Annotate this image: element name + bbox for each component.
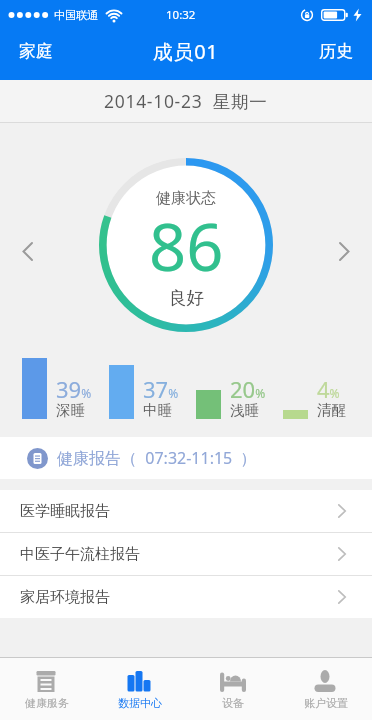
staticText: 历史: [319, 41, 353, 62]
button[interactable]: 健康服务: [0, 658, 93, 720]
staticText: 4%: [317, 374, 340, 404]
button[interactable]: 家居环境报告: [0, 576, 372, 618]
staticText: 健康服务: [25, 696, 69, 710]
button[interactable]: 账户设置: [279, 658, 372, 720]
button[interactable]: 健康报告（ 07:32-11:15 ）: [0, 437, 372, 479]
staticText: 良好: [169, 287, 204, 309]
staticText: 账户设置: [304, 696, 348, 710]
staticText: 10:32: [166, 7, 196, 23]
staticText: 中国联通: [54, 8, 98, 22]
button[interactable]: 设备: [186, 658, 279, 720]
button[interactable]: 中医子午流柱报告: [0, 533, 372, 575]
staticText: 2014-10-23 星期一: [104, 89, 268, 113]
button[interactable]: 数据中心: [93, 658, 186, 720]
staticText: 浅睡: [230, 401, 259, 419]
staticText: 医学睡眠报告: [20, 502, 110, 521]
button[interactable]: [339, 242, 350, 261]
staticText: 家居环境报告: [20, 588, 110, 607]
staticText: 39%: [56, 374, 92, 404]
staticText: 健康状态: [156, 189, 216, 208]
staticText: 深睡: [56, 401, 85, 419]
staticText: 20%: [230, 374, 266, 404]
button[interactable]: 历史: [307, 31, 372, 72]
button[interactable]: [22, 242, 33, 261]
staticText: 家庭: [19, 41, 53, 62]
button[interactable]: 医学睡眠报告: [0, 490, 372, 532]
staticText: 清醒: [317, 401, 346, 419]
staticText: 86: [149, 202, 224, 291]
staticText: 中睡: [143, 401, 172, 419]
staticText: 成员01: [153, 38, 219, 65]
staticText: 37%: [143, 374, 179, 404]
staticText: 中医子午流柱报告: [20, 545, 140, 564]
button[interactable]: 家庭: [0, 31, 65, 72]
staticText: 数据中心: [118, 696, 162, 710]
staticText: 健康报告（ 07:32-11:15 ）: [57, 447, 257, 469]
staticText: 设备: [222, 696, 244, 710]
